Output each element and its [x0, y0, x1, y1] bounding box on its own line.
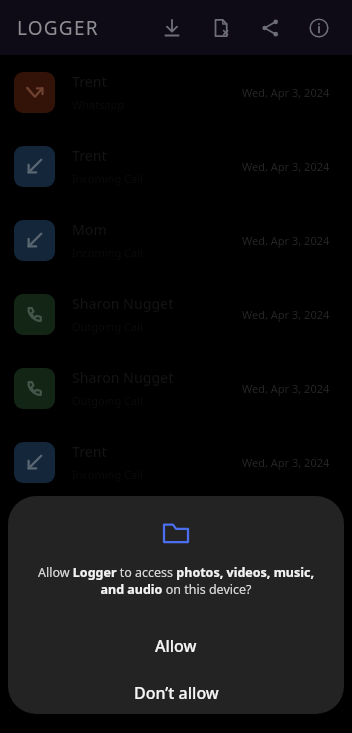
button[interactable]: Sharon Nugget [0, 277, 352, 351]
staticText: Wed, Apr 3, 2024 [242, 85, 330, 100]
staticText: Don’t allow [134, 682, 219, 704]
staticText: Wed, Apr 3, 2024 [242, 381, 330, 396]
staticText: Mom [72, 590, 107, 609]
staticText: Trent [72, 442, 107, 461]
staticText: Allow [155, 635, 197, 657]
button[interactable]: Trent [0, 129, 352, 203]
staticText: Mom [72, 220, 107, 239]
button[interactable]: Allow [8, 620, 344, 671]
button[interactable]: Trent [0, 55, 352, 129]
staticText: Wed, Apr 3, 2024 [242, 159, 330, 174]
staticText: Trent [72, 72, 107, 91]
button[interactable]: Trent [0, 499, 352, 573]
button[interactable]: Mom [0, 203, 352, 277]
staticText: Trent [72, 146, 107, 165]
button[interactable]: Mom [0, 573, 352, 647]
staticText: Sharon Nugget [72, 294, 174, 313]
button[interactable]: Share [257, 15, 283, 41]
button[interactable]: Sharon Nugget [0, 351, 352, 425]
button[interactable]: Download [159, 15, 185, 41]
button[interactable]: Don’t allow [8, 671, 344, 714]
staticText: Wed, Apr 3, 2024 [242, 455, 330, 470]
staticText: Wed, Apr 3, 2024 [242, 307, 330, 322]
staticText: Wed, Apr 3, 2024 [242, 233, 330, 248]
button[interactable]: Export file [208, 15, 234, 41]
button[interactable]: Trent [0, 425, 352, 499]
button[interactable]: Info [306, 15, 332, 41]
staticText: Sharon Nugget [72, 368, 174, 387]
staticText: LOGGER [17, 15, 99, 41]
staticText: Allow Logger to access photos, videos, m… [36, 564, 316, 598]
